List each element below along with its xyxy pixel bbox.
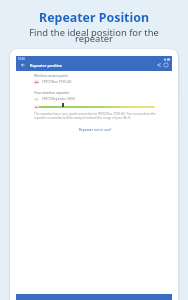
staticText: Your wireless repeater bbox=[34, 90, 70, 95]
other: Back bbox=[21, 63, 25, 67]
staticText: Repeater position bbox=[30, 63, 63, 68]
staticText: Repeater not in use? bbox=[34, 127, 156, 132]
staticText: Repeater Position bbox=[39, 9, 149, 26]
staticText: 10:30 bbox=[18, 57, 25, 61]
staticText: The repeater has a very good connection … bbox=[34, 112, 156, 120]
button[interactable]: 10:30 bbox=[16, 56, 172, 71]
button[interactable]: Share bbox=[156, 62, 162, 68]
staticText: Find the ideal position for the repeater bbox=[24, 26, 164, 45]
staticText: FRITZ!Repeater 3000 bbox=[42, 96, 75, 101]
button[interactable]: Repeater not in use? bbox=[34, 127, 156, 132]
staticText: Wireless access point bbox=[34, 73, 68, 78]
button[interactable]: Help bbox=[163, 62, 169, 68]
staticText: FRITZ!Box 7590 AX bbox=[42, 79, 72, 84]
